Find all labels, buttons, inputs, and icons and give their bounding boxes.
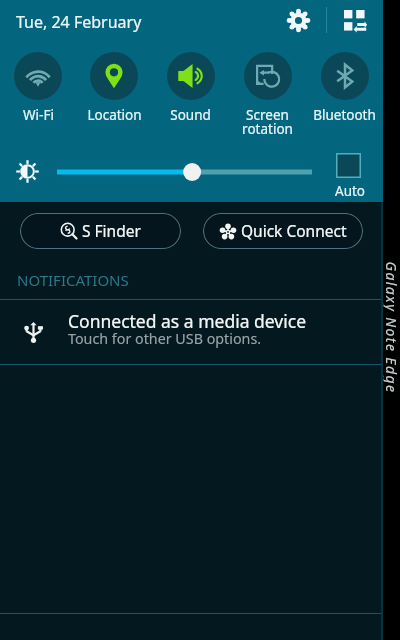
staticText: Auto [335,182,366,200]
staticText: Touch for other USB options. [68,329,262,348]
staticText: Location [87,106,142,124]
staticText: S Finder [82,220,141,241]
staticText: Quick Connect [241,220,347,241]
staticText: Screen rotation [242,106,293,138]
button[interactable]: S Finder [20,213,181,249]
button[interactable]: Screen rotation [229,52,306,138]
button[interactable]: Wi-Fi [0,52,76,124]
button[interactable]: Brightness [57,155,312,187]
button[interactable]: Brightness mode [11,155,43,187]
button[interactable]: Bluetooth [306,52,383,124]
staticText: Bluetooth [313,106,376,124]
staticText: Galaxy Note Edge [383,261,400,393]
staticText: Connected as a media device [68,309,306,333]
button[interactable]: Settings [278,0,319,41]
staticText: NOTIFICATIONS [17,270,129,290]
button[interactable]: Location [76,52,152,124]
button[interactable]: Quick Connect [203,213,363,249]
staticText: Sound [170,106,211,124]
button[interactable]: Connected as a media device [0,300,383,365]
button[interactable]: Edit quick settings [334,0,375,41]
button[interactable]: Sound [152,52,229,124]
button[interactable]: Auto [329,146,369,202]
staticText: Tue, 24 February [16,11,142,33]
staticText: Wi-Fi [23,106,54,124]
